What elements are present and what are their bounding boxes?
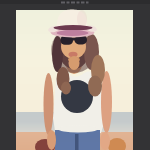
button[interactable] xyxy=(16,10,133,150)
